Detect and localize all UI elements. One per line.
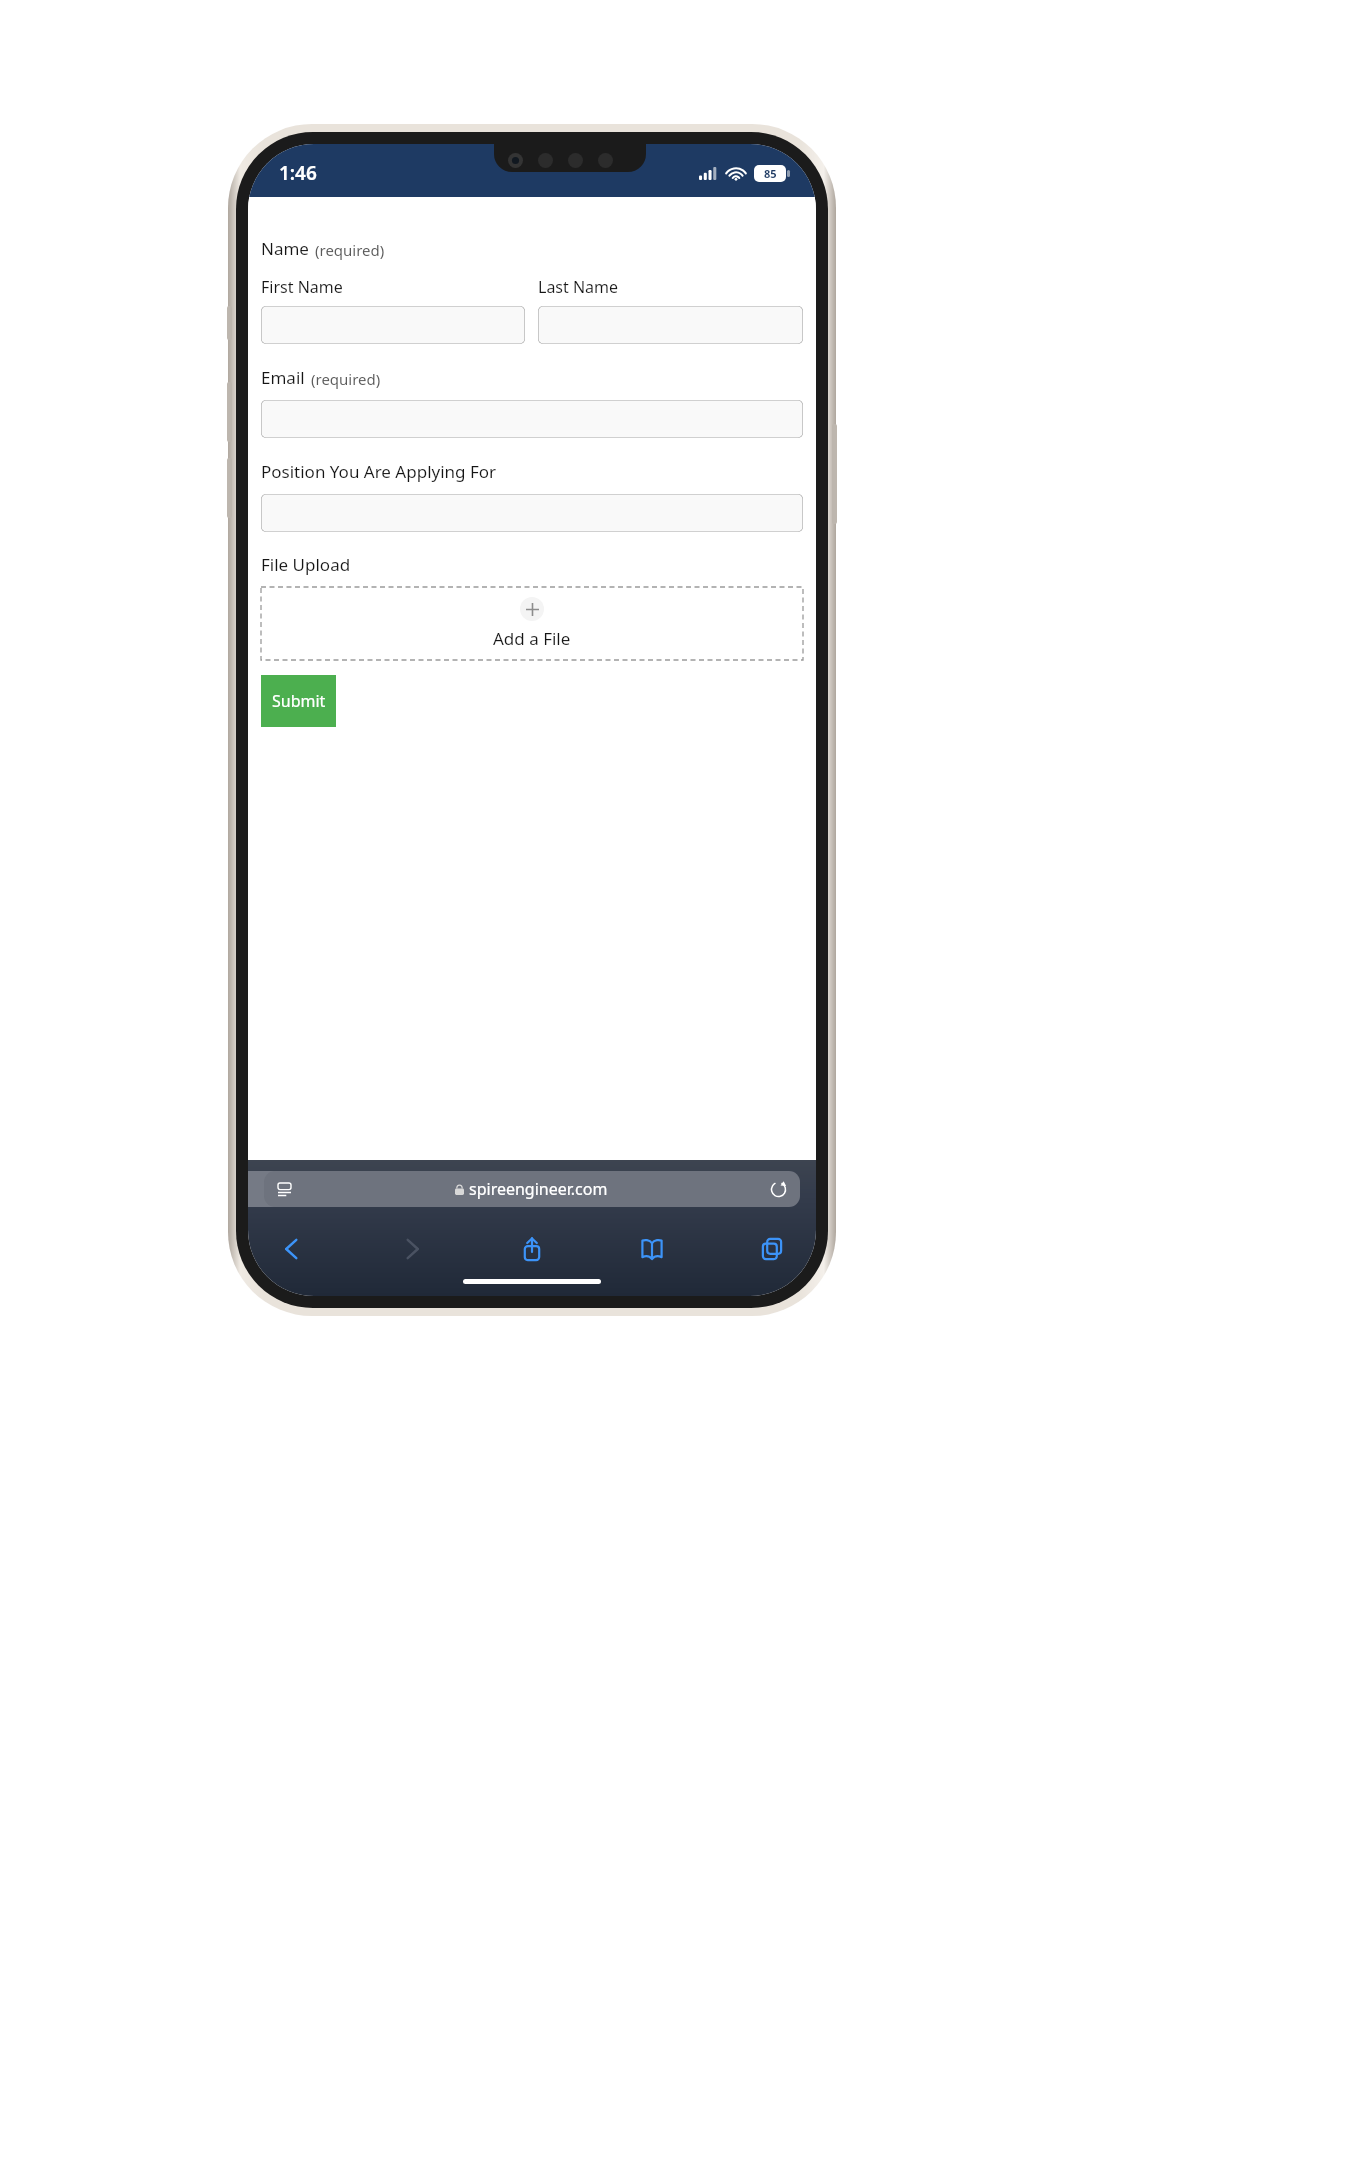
button[interactable]: Back: [270, 1227, 314, 1271]
staticText: spireengineer.com: [469, 1178, 608, 1200]
other: Reload: [770, 1181, 787, 1198]
button[interactable]: Share: [510, 1227, 554, 1271]
button[interactable]: [261, 400, 803, 438]
staticText: Last Name: [538, 276, 619, 298]
other: Reader: [277, 1182, 292, 1197]
staticText: 85: [764, 166, 777, 181]
staticText: 1:46: [279, 160, 317, 186]
staticText: (required): [311, 369, 381, 389]
button[interactable]: Submit: [261, 675, 336, 727]
staticText: (required): [315, 240, 385, 260]
button[interactable]: Reader: [264, 1171, 800, 1207]
button[interactable]: Add a File: [261, 587, 803, 660]
staticText: Email: [261, 366, 305, 389]
button[interactable]: Forward: [390, 1227, 434, 1271]
staticText: Name: [261, 237, 309, 260]
staticText: File Upload: [261, 553, 351, 576]
staticText: Position You Are Applying For: [261, 460, 497, 483]
button[interactable]: [538, 306, 803, 344]
button[interactable]: Bookmarks: [630, 1227, 674, 1271]
staticText: Submit: [272, 690, 326, 712]
button[interactable]: Tabs: [750, 1227, 794, 1271]
staticText: Add a File: [493, 627, 571, 650]
staticText: First Name: [261, 276, 343, 298]
button[interactable]: [261, 306, 525, 344]
button[interactable]: [261, 494, 803, 532]
